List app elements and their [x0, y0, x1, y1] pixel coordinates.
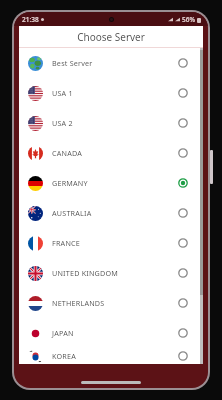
button[interactable]: JAPAN	[19, 318, 203, 348]
button[interactable]: GERMANY	[19, 168, 203, 198]
button[interactable]: FRANCE	[19, 228, 203, 258]
staticText: CANADA	[52, 148, 174, 158]
button[interactable]: Select AUSTRALIA	[174, 204, 192, 222]
button[interactable]: Select CANADA	[174, 144, 192, 162]
button[interactable]: Select UNITED KINGDOM	[174, 264, 192, 282]
button[interactable]: Select KOREA	[174, 348, 192, 364]
button[interactable]: Best Server	[19, 48, 203, 78]
button[interactable]: USA 1	[19, 78, 203, 108]
staticText: GERMANY	[52, 178, 174, 188]
button[interactable]: Select NETHERLANDS	[174, 294, 192, 312]
staticText: 21:38	[22, 15, 39, 24]
button[interactable]: Select USA 1	[174, 84, 192, 102]
button[interactable]: Select JAPAN	[174, 324, 192, 342]
button[interactable]: KOREA	[19, 348, 203, 364]
button[interactable]: NETHERLANDS	[19, 288, 203, 318]
staticText: UNITED KINGDOM	[52, 268, 174, 278]
staticText: JAPAN	[52, 328, 174, 338]
button[interactable]: Select FRANCE	[174, 234, 192, 252]
staticText: Choose Server	[77, 30, 145, 44]
staticText: USA 1	[52, 88, 174, 98]
button[interactable]: Select Best Server	[174, 54, 192, 72]
staticText: 56%	[182, 15, 195, 24]
staticText: NETHERLANDS	[52, 298, 174, 308]
button[interactable]: Select USA 2	[174, 114, 192, 132]
button[interactable]: CANADA	[19, 138, 203, 168]
staticText: KOREA	[52, 351, 174, 361]
staticText: Best Server	[52, 58, 174, 68]
button[interactable]: Selected GERMANY	[174, 174, 192, 192]
button[interactable]: USA 2	[19, 108, 203, 138]
button[interactable]: UNITED KINGDOM	[19, 258, 203, 288]
staticText: FRANCE	[52, 238, 174, 248]
staticText: AUSTRALIA	[52, 208, 174, 218]
staticText: USA 2	[52, 118, 174, 128]
button[interactable]: AUSTRALIA	[19, 198, 203, 228]
